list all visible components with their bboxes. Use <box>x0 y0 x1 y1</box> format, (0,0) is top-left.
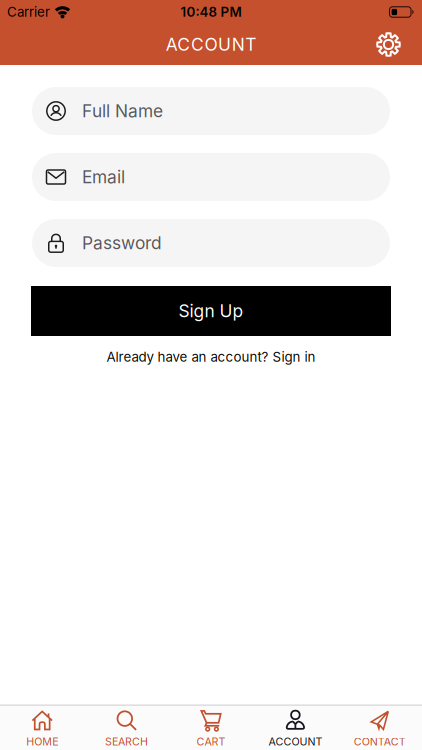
staticText: Full Name <box>82 101 163 121</box>
staticText: Sign Up <box>178 301 243 321</box>
staticText: ACCOUNT <box>166 34 256 55</box>
staticText: HOME <box>26 735 58 748</box>
staticText: CART <box>196 735 225 748</box>
staticText: CONTACT <box>354 735 406 748</box>
staticText: 10:48 PM <box>180 4 241 20</box>
staticText: Carrier <box>7 4 50 20</box>
staticText: SEARCH <box>105 735 148 748</box>
staticText: ACCOUNT <box>268 735 322 748</box>
staticText: Already have an account? Sign in <box>106 349 315 365</box>
staticText: Password <box>82 233 162 253</box>
staticText: Email <box>82 167 125 187</box>
